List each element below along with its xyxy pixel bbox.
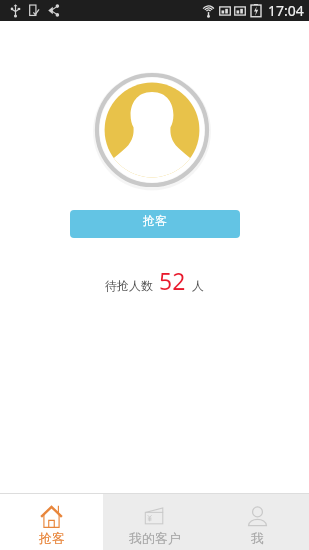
button[interactable]: 抢客 [0,494,103,550]
staticText: 我的客户 [129,530,181,546]
staticText: 抢客 [39,530,65,546]
staticText: 52 [159,265,186,296]
button[interactable]: 我 [206,494,309,550]
button[interactable]: Profile photo [93,71,211,189]
staticText: 17:04 [268,1,304,20]
button[interactable]: 抢客 [70,210,240,238]
staticText: 人 [192,278,204,293]
staticText: 我 [251,530,264,546]
staticText: 抢客 [143,213,167,228]
staticText: 待抢人数 [105,278,153,293]
button[interactable]: 我的客户 [103,494,206,550]
